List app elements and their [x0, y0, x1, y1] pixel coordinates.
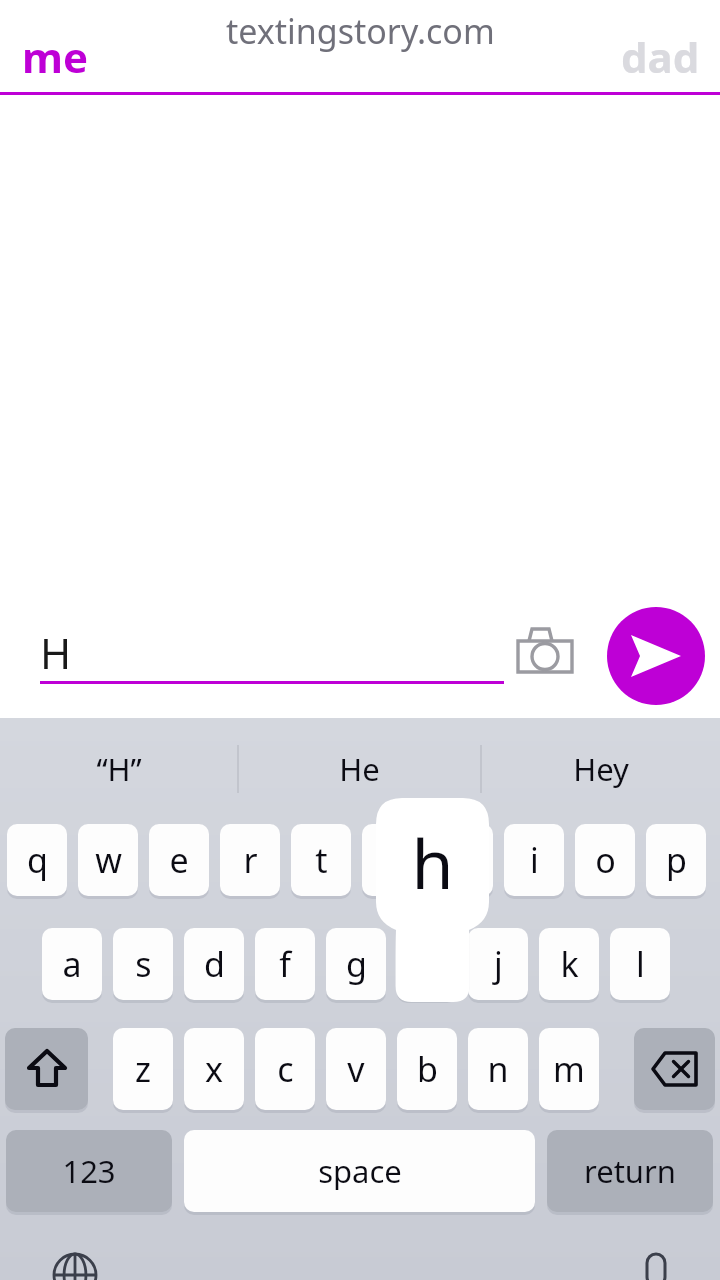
button[interactable]: s	[113, 928, 173, 1000]
staticText: f	[279, 941, 291, 987]
staticText: Hey	[573, 748, 629, 790]
button[interactable]: Change keyboard	[52, 1252, 98, 1280]
button[interactable]: He	[239, 740, 480, 798]
button[interactable]: y	[362, 824, 422, 896]
button[interactable]: j	[468, 928, 528, 1000]
staticText: a	[62, 941, 82, 987]
button[interactable]: b	[397, 1028, 457, 1110]
button[interactable]: t	[291, 824, 351, 896]
button[interactable]: o	[575, 824, 635, 896]
button[interactable]: i	[504, 824, 564, 896]
button[interactable]: Delete	[634, 1028, 715, 1110]
staticText: H	[40, 624, 72, 681]
button[interactable]: Dictate	[638, 1252, 674, 1280]
button[interactable]: Send	[607, 607, 705, 705]
staticText: n	[487, 1046, 509, 1092]
staticText: space	[318, 1150, 402, 1192]
button[interactable]: k	[539, 928, 599, 1000]
button[interactable]: r	[220, 824, 280, 896]
button[interactable]: z	[113, 1028, 173, 1110]
button[interactable]: p	[646, 824, 706, 896]
staticText: p	[666, 837, 687, 883]
staticText: r	[243, 837, 258, 883]
button[interactable]: Shift	[5, 1028, 88, 1110]
staticText: k	[560, 941, 579, 987]
button[interactable]: q	[7, 824, 67, 896]
button[interactable]: l	[610, 928, 670, 1000]
staticText: l	[636, 941, 645, 987]
button[interactable]: u	[433, 824, 493, 896]
staticText: c	[277, 1046, 294, 1092]
button[interactable]: m	[539, 1028, 599, 1110]
staticText: “H”	[96, 748, 142, 790]
staticText: b	[417, 1046, 438, 1092]
staticText: m	[553, 1046, 585, 1092]
staticText: v	[347, 1046, 365, 1092]
button[interactable]: dad	[520, 0, 720, 92]
staticText: 123	[62, 1150, 116, 1192]
button[interactable]: n	[468, 1028, 528, 1110]
staticText: j	[494, 941, 503, 987]
staticText: x	[205, 1046, 223, 1092]
staticText: i	[530, 837, 539, 883]
button[interactable]: Hey	[482, 740, 720, 798]
staticText: He	[339, 748, 380, 790]
button[interactable]: space	[184, 1130, 535, 1212]
staticText: dad	[621, 28, 700, 85]
button[interactable]: return	[547, 1130, 713, 1212]
staticText: t	[315, 837, 328, 883]
staticText: z	[135, 1046, 151, 1092]
button[interactable]: d	[184, 928, 244, 1000]
staticText: e	[169, 837, 189, 883]
staticText: return	[584, 1150, 676, 1192]
staticText: g	[346, 941, 367, 987]
staticText: s	[135, 941, 152, 987]
button[interactable]: e	[149, 824, 209, 896]
button[interactable]: v	[326, 1028, 386, 1110]
button[interactable]: a	[42, 928, 102, 1000]
button[interactable]: x	[184, 1028, 244, 1110]
button[interactable]: 123	[6, 1130, 172, 1212]
button[interactable]: Camera	[514, 621, 576, 677]
staticText: d	[204, 941, 225, 987]
button[interactable]: g	[326, 928, 386, 1000]
button[interactable]: c	[255, 1028, 315, 1110]
staticText: q	[27, 837, 48, 883]
button[interactable]: f	[255, 928, 315, 1000]
button[interactable]: me	[0, 0, 200, 92]
staticText: w	[95, 837, 122, 883]
staticText: o	[595, 837, 616, 883]
staticText: textingstory.com	[226, 8, 495, 54]
staticText: me	[22, 28, 89, 85]
button[interactable]: “H”	[0, 740, 237, 798]
staticText: h	[411, 816, 454, 909]
button[interactable]: w	[78, 824, 138, 896]
